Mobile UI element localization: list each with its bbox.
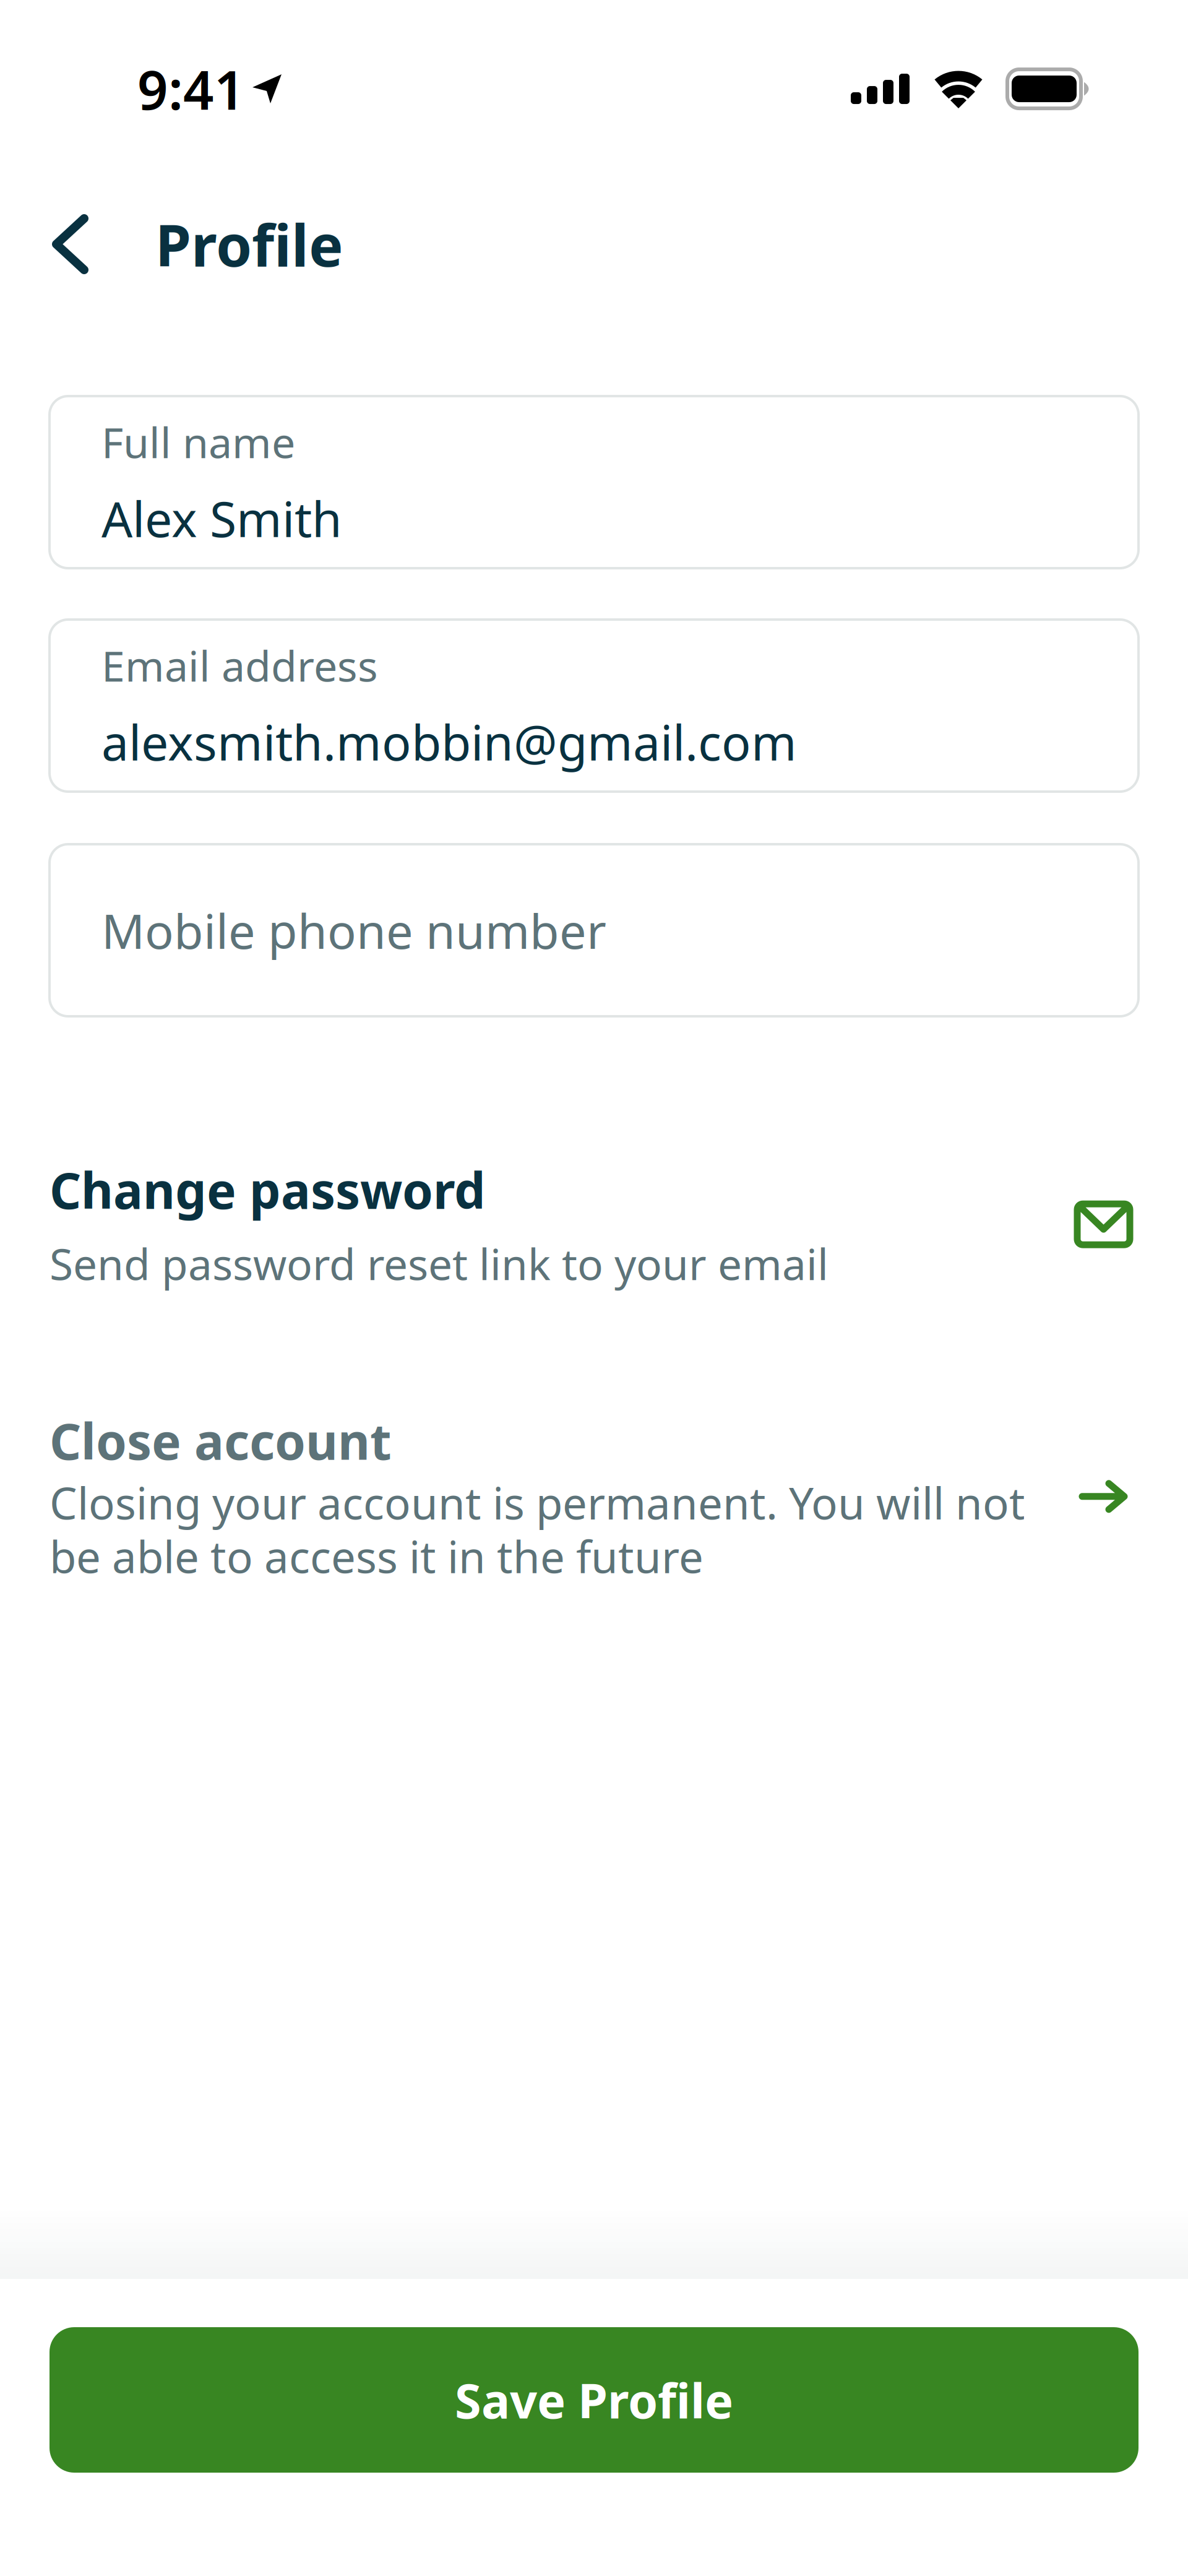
staticText: Change password	[49, 1157, 486, 1223]
button[interactable]: Change password	[49, 1157, 1138, 1292]
staticText: 9:41	[137, 53, 245, 124]
button[interactable]: Back	[0, 166, 155, 322]
button[interactable]: Save Profile	[49, 2327, 1138, 2473]
staticText: alexsmith.mobbin@gmail.com	[101, 709, 797, 774]
staticText: Full name	[101, 414, 295, 470]
staticText: Save Profile	[455, 2368, 733, 2432]
staticText: Email address	[101, 637, 378, 693]
button[interactable]: Email address	[49, 620, 1138, 792]
staticText: Mobile phone number	[101, 899, 606, 962]
button[interactable]: Full name	[49, 396, 1138, 568]
staticText: Profile	[155, 206, 343, 282]
button[interactable]: Mobile phone number	[49, 844, 1138, 1016]
staticText: Send password reset link to your email	[49, 1235, 829, 1292]
staticText: Close account	[49, 1408, 392, 1473]
staticText: Alex Smith	[101, 486, 342, 550]
staticText: Closing your account is permanent. You w…	[49, 1473, 1025, 1585]
button[interactable]: Close account	[49, 1408, 1138, 1585]
